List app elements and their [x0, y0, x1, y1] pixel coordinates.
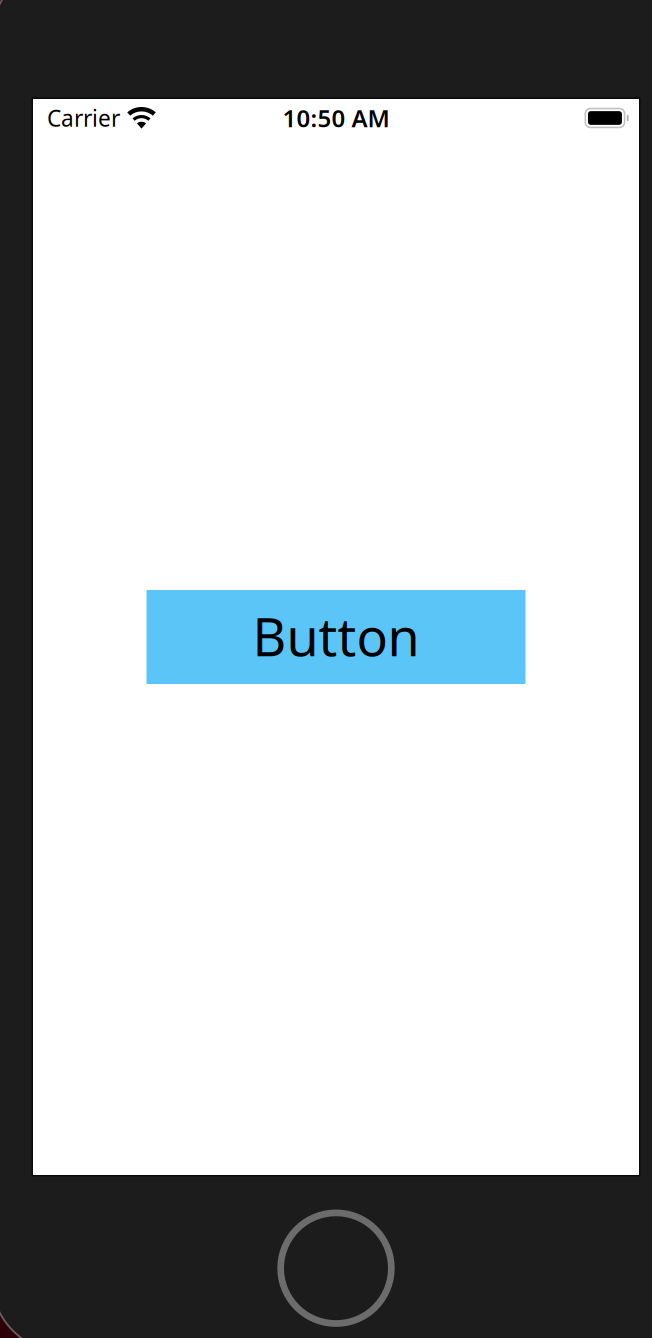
staticText: Button: [252, 601, 419, 671]
staticText: 10:50 AM: [282, 102, 389, 134]
button[interactable]: Button: [146, 590, 525, 684]
staticText: Carrier: [47, 103, 120, 133]
